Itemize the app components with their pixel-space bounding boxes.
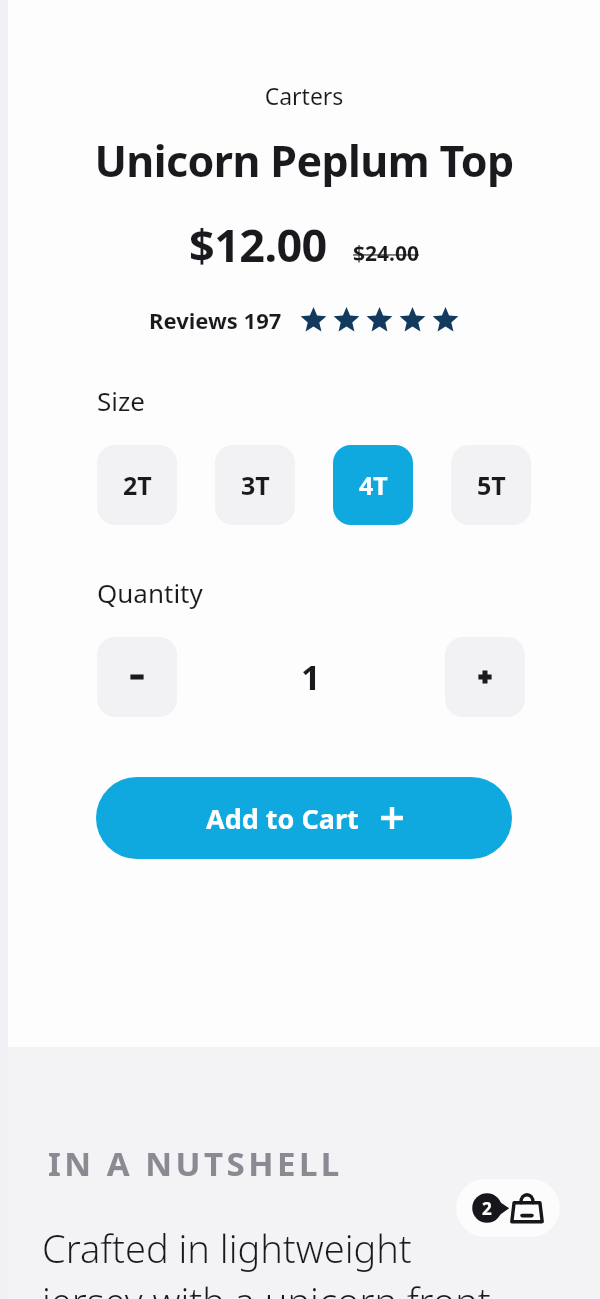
staticText: $12.00	[189, 214, 327, 275]
staticText: 5T	[477, 468, 506, 502]
staticText: Add to Cart	[206, 800, 359, 837]
staticText: Reviews 197	[149, 305, 282, 335]
staticText: Quantity	[97, 575, 203, 610]
staticText: 4T	[359, 468, 388, 502]
staticText: Size	[97, 383, 145, 418]
button[interactable]: Cart, 2 items	[456, 1179, 560, 1237]
button[interactable]: Decrease quantity	[97, 637, 177, 717]
staticText: 2	[482, 1197, 492, 1220]
staticText: Crafted in lightweight jersey with a uni…	[42, 1222, 491, 1299]
staticText: 2T	[123, 468, 152, 502]
staticText: Unicorn Peplum Top	[8, 131, 600, 190]
button[interactable]: 5T	[451, 445, 531, 525]
staticText: 1	[301, 654, 321, 700]
button[interactable]: Increase quantity	[445, 637, 525, 717]
button[interactable]: Add to Cart	[96, 777, 512, 859]
button[interactable]: 4T	[333, 445, 413, 525]
staticText: $24.00	[353, 239, 419, 268]
staticText: IN A NUTSHELL	[48, 1141, 343, 1186]
staticText: Carters	[8, 80, 600, 111]
button[interactable]: 2T	[97, 445, 177, 525]
staticText: 3T	[241, 468, 270, 502]
button[interactable]: 3T	[215, 445, 295, 525]
